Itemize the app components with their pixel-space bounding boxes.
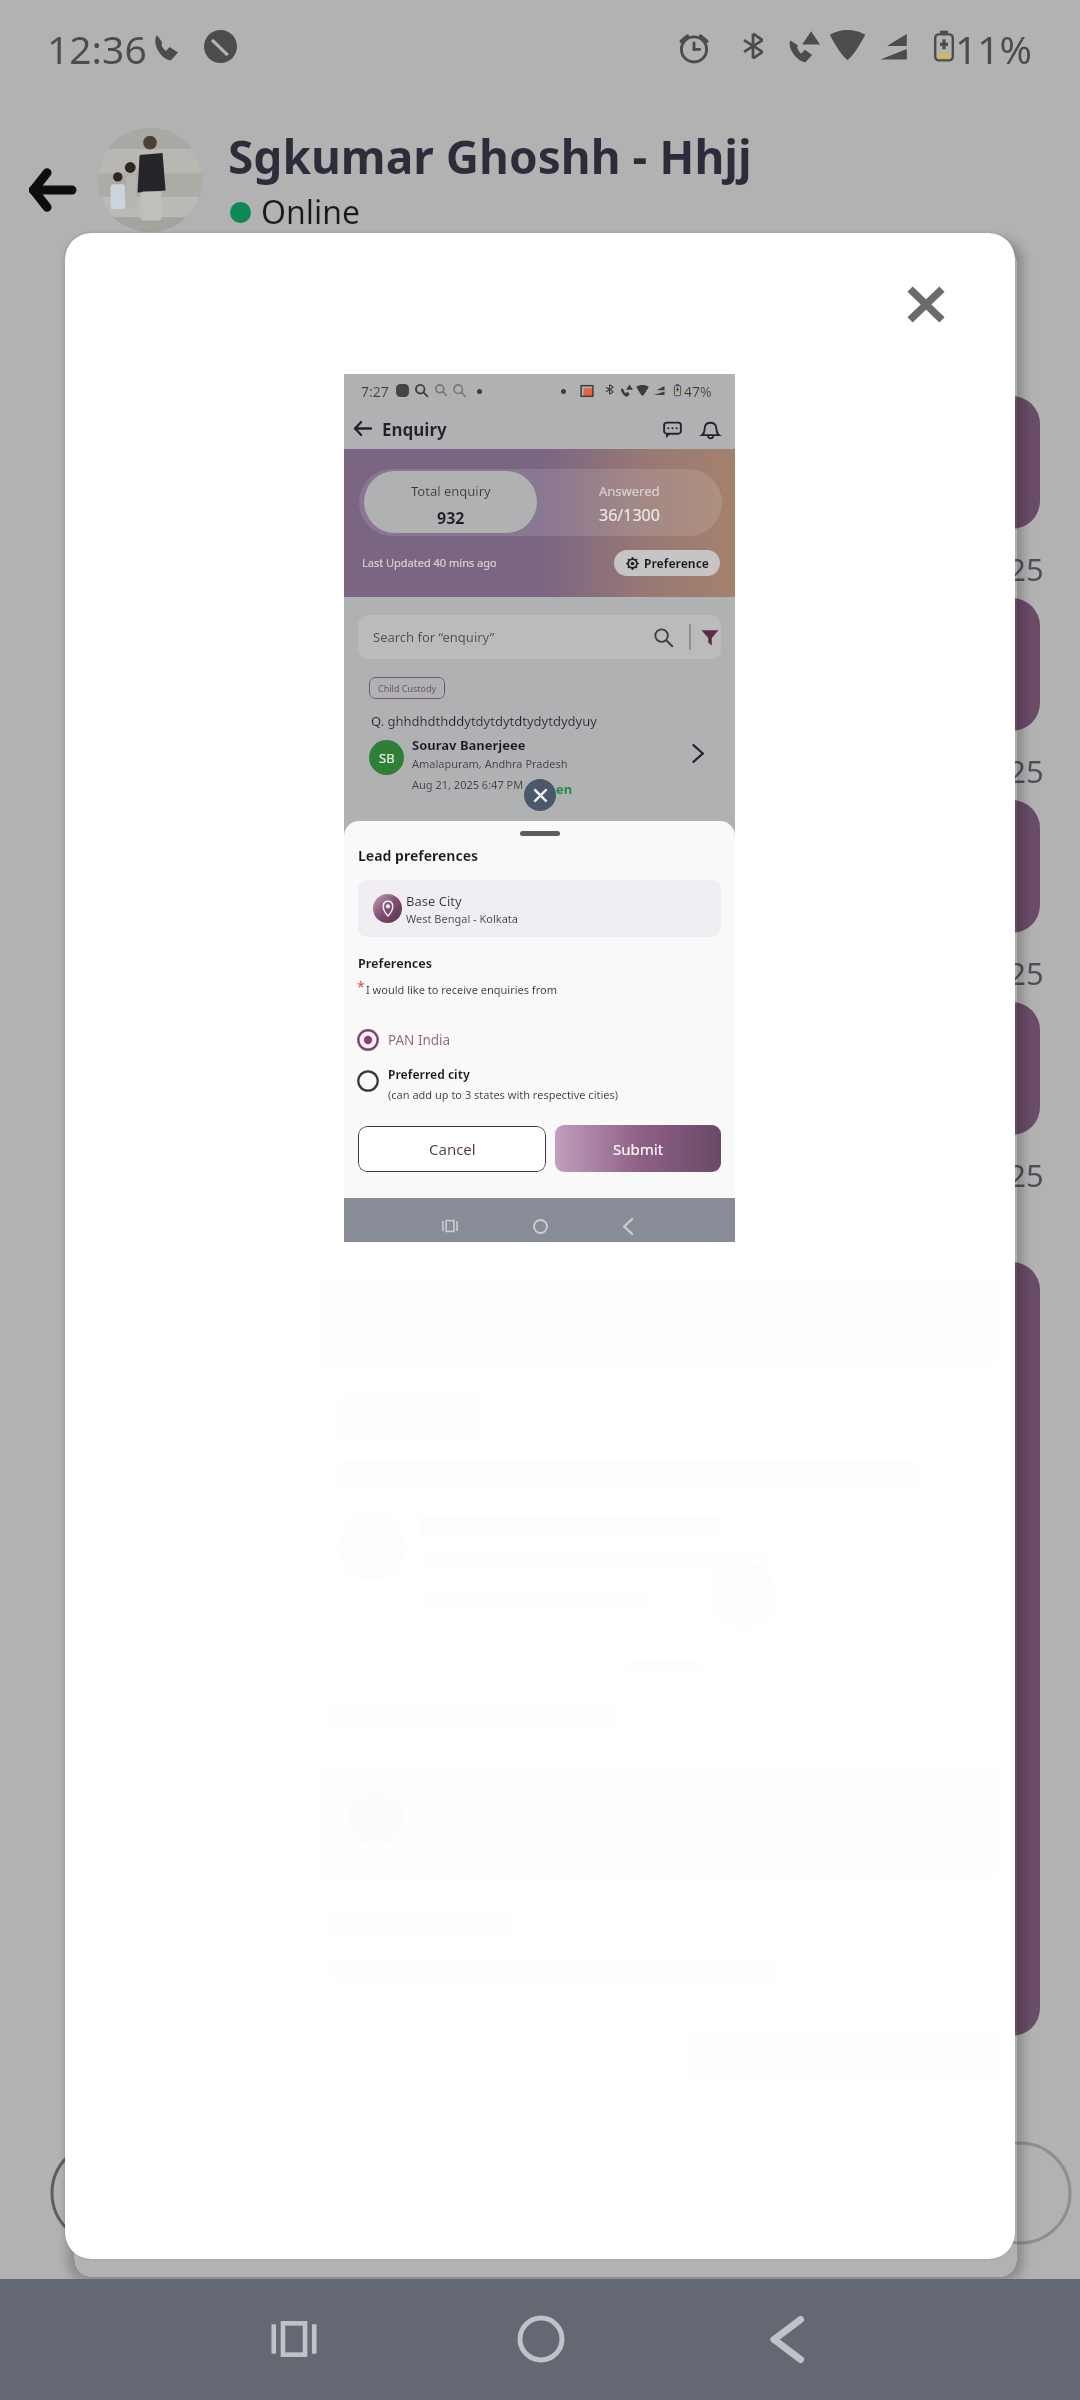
staticText: Last Updated 40 mins ago xyxy=(362,555,497,570)
button[interactable]: Home xyxy=(495,2293,587,2385)
staticText: Search for “enquiry” xyxy=(373,628,495,646)
staticText: Sourav Banerjeee xyxy=(412,736,526,754)
button[interactable]: Close sheet xyxy=(524,779,556,811)
button[interactable]: Submit xyxy=(555,1125,721,1172)
staticText: 7:27 xyxy=(361,382,389,401)
staticText: 11% xyxy=(955,22,1033,75)
staticText: Aug 21, 2025 6:47 PM xyxy=(412,777,524,792)
staticText: 36/1300 xyxy=(599,504,660,526)
staticText: Answered xyxy=(599,482,660,500)
button[interactable]: Base City xyxy=(358,880,721,937)
button[interactable]: Cancel xyxy=(358,1126,546,1172)
staticText: Submit xyxy=(613,1139,664,1159)
button[interactable]: Search for “enquiry” xyxy=(358,615,721,659)
button[interactable]: Recents xyxy=(433,1209,467,1243)
staticText: 12:36 xyxy=(47,22,147,75)
button[interactable]: Back xyxy=(8,148,92,232)
staticText: :25 xyxy=(1000,548,1044,590)
staticText: Cancel xyxy=(429,1139,476,1159)
staticText: en xyxy=(556,780,573,798)
button[interactable]: Recents xyxy=(248,2293,340,2385)
button[interactable]: Preferred city xyxy=(357,1066,697,1118)
staticText: West Bengal - Kolkata xyxy=(406,911,518,926)
staticText: PAN India xyxy=(388,1031,451,1049)
staticText: Lead preferences xyxy=(358,846,479,865)
staticText: Enquiry xyxy=(382,418,447,441)
staticText: 932 xyxy=(437,507,465,529)
staticText: Online xyxy=(261,190,361,234)
button[interactable]: PAN India xyxy=(357,1023,617,1057)
staticText: Base City xyxy=(406,892,462,910)
button[interactable]: Close xyxy=(871,249,981,359)
staticText: SB xyxy=(379,749,395,767)
staticText: Preferred city xyxy=(388,1066,470,1082)
button[interactable]: Back xyxy=(611,1209,645,1243)
button[interactable]: Messages xyxy=(657,414,687,444)
staticText: Child Custody xyxy=(378,682,437,694)
staticText: :25 xyxy=(1000,750,1044,792)
button[interactable]: Back xyxy=(741,2293,833,2385)
staticText: Amalapuram, Andhra Pradesh xyxy=(412,756,568,771)
button[interactable]: Sgkumar Ghoshh - Hhjj xyxy=(228,125,752,188)
staticText: * xyxy=(357,977,365,996)
staticText: Total enquiry xyxy=(411,482,491,500)
staticText: :25 xyxy=(1000,1154,1044,1196)
button[interactable]: Notifications xyxy=(695,414,725,444)
button[interactable]: Preference xyxy=(614,550,720,576)
staticText: I would like to receive enquiries from xyxy=(366,982,557,997)
staticText: :25 xyxy=(1000,952,1044,994)
button[interactable]: Sourav Banerjeee xyxy=(412,736,712,792)
button[interactable]: Back xyxy=(348,414,376,442)
staticText: Q. ghhdhdthddytdytdytdtydytdydyuy xyxy=(371,712,597,730)
staticText: (can add up to 3 states with respective … xyxy=(388,1087,619,1102)
staticText: Preference xyxy=(644,555,709,571)
button[interactable]: Home xyxy=(523,1209,557,1243)
button[interactable]: Profile photo xyxy=(98,128,202,232)
staticText: Preferences xyxy=(358,955,432,972)
button[interactable]: Child Custody xyxy=(369,677,445,699)
staticText: 47% xyxy=(684,382,712,401)
